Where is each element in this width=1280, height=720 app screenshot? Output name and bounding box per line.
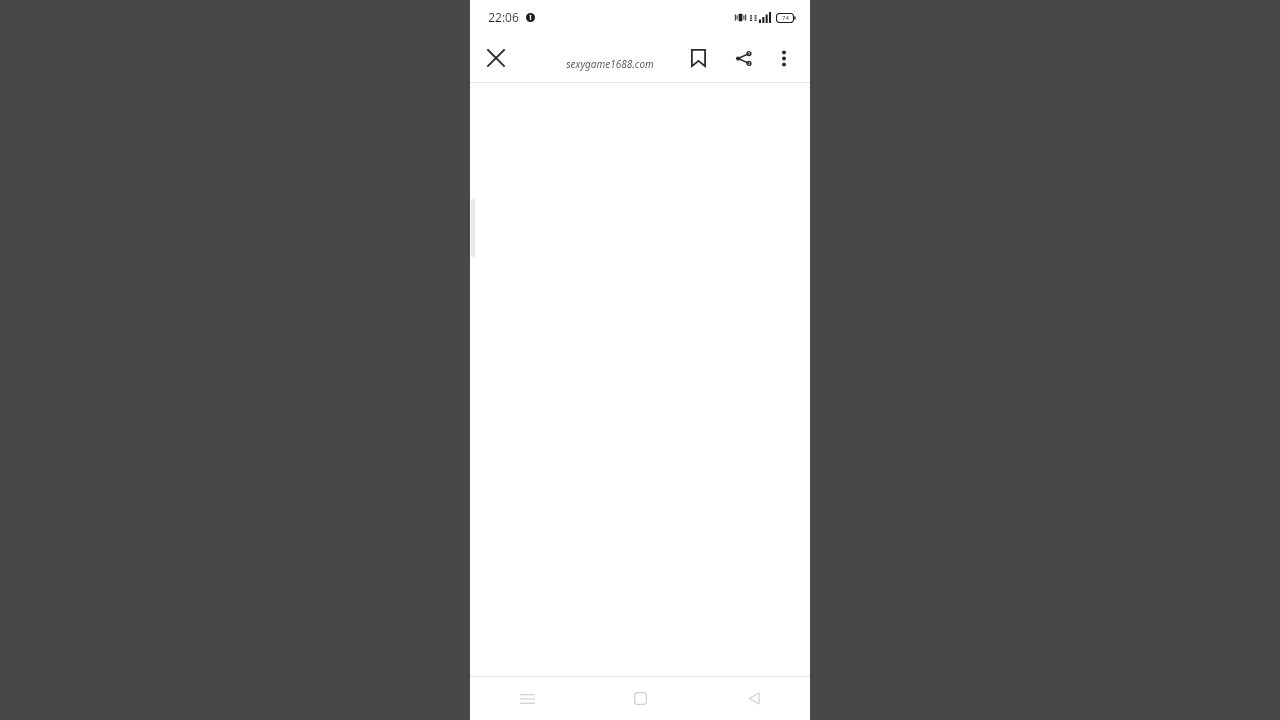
staticText: sexygame1688.com bbox=[566, 57, 654, 71]
button[interactable]: Home bbox=[584, 677, 697, 720]
button[interactable]: Recent apps bbox=[470, 677, 584, 720]
staticText: 22:06 bbox=[488, 9, 519, 25]
staticText: 74 bbox=[782, 14, 789, 22]
button[interactable]: Back bbox=[697, 677, 810, 720]
button[interactable]: More options bbox=[766, 40, 802, 76]
button[interactable]: Share bbox=[725, 40, 761, 76]
button[interactable]: Close bbox=[478, 40, 514, 76]
button[interactable]: sexygame1688.com bbox=[530, 57, 690, 71]
button[interactable]: Bookmark bbox=[680, 40, 716, 76]
